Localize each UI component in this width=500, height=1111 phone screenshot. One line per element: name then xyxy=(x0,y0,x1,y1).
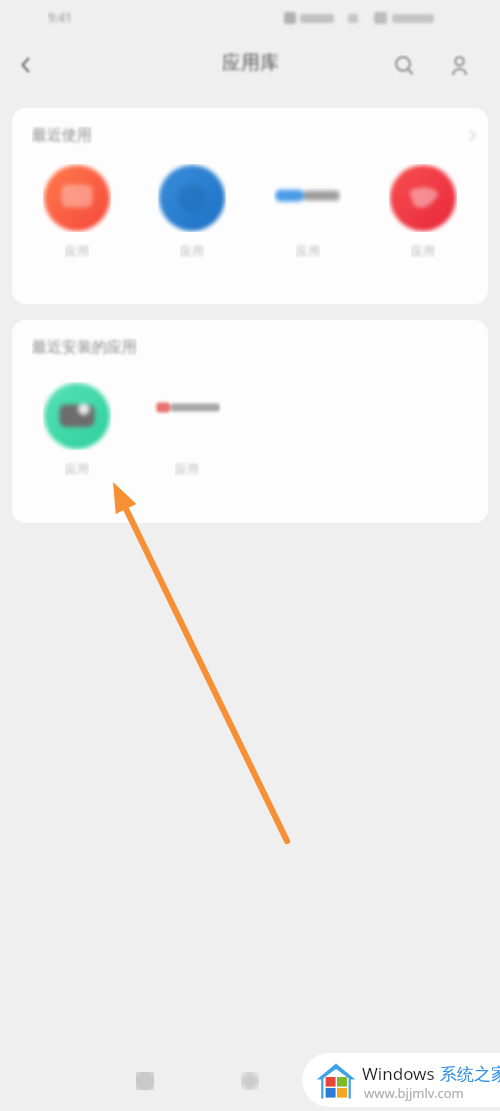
staticText: 应用 xyxy=(296,243,320,258)
button[interactable]: Search xyxy=(386,47,422,83)
button[interactable]: Home xyxy=(231,1062,269,1100)
staticText: 应用 xyxy=(175,461,199,476)
button[interactable]: 应用 xyxy=(22,164,132,258)
staticText: 应用 xyxy=(65,243,89,258)
staticText: 应用 xyxy=(411,243,435,258)
staticText: 9:41 xyxy=(48,9,72,25)
staticText: 应用 xyxy=(65,461,89,476)
button[interactable]: 应用 xyxy=(253,164,363,258)
button[interactable]: 最近使用 xyxy=(12,108,488,304)
button[interactable]: Recents xyxy=(126,1062,164,1100)
button[interactable]: Profile xyxy=(441,47,477,83)
button[interactable]: 应用 xyxy=(22,382,132,476)
staticText: Windows xyxy=(362,1062,440,1085)
staticText: 最近安装的应用 xyxy=(32,338,137,357)
staticText: www.bjjmlv.com xyxy=(364,1084,464,1102)
staticText: 系统之家 xyxy=(440,1064,500,1085)
staticText: 应用 xyxy=(180,243,204,258)
button[interactable]: Back xyxy=(8,47,44,83)
button[interactable]: 最近安装的应用 xyxy=(12,320,488,523)
button[interactable]: 应用 xyxy=(137,164,247,258)
button[interactable]: 应用 xyxy=(368,164,478,258)
button[interactable]: 应用 xyxy=(132,382,242,476)
button[interactable]: More xyxy=(458,121,486,149)
staticText: 应用库 xyxy=(222,51,279,75)
staticText: 最近使用 xyxy=(32,126,92,145)
